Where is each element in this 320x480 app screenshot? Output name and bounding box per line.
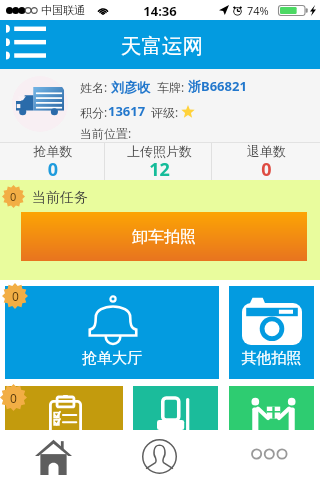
staticText: 当前位置: [80,125,132,141]
staticText: 姓名: [80,79,108,95]
button[interactable]: 任务单 [5,386,123,430]
staticText: 积分: [80,104,108,120]
staticText: 车牌: [157,79,185,95]
button[interactable]: 装车 [133,386,218,430]
button[interactable]: More [213,434,320,480]
staticText: 当前任务 [32,189,88,207]
button[interactable]: 退单数 [213,142,320,180]
staticText: 0 [213,157,320,182]
staticText: 刘彦收 [111,79,150,95]
staticText: 抢单大厅 [5,349,219,368]
button[interactable]: 抢单大厅 [5,286,219,379]
button[interactable]: 其他拍照 [229,286,314,379]
button[interactable]: Home [0,434,106,480]
staticText: 浙B66821 [188,77,247,95]
staticText: 天富运网 [121,33,203,59]
staticText: 上传照片数 [106,143,213,159]
staticText: 抢单数 [0,143,106,159]
button[interactable]: 卸车拍照 [21,212,307,261]
button[interactable]: 抢单数 [0,142,106,180]
staticText: 0 [10,189,17,204]
staticText: 评级: [151,104,179,120]
button[interactable]: Profile [106,434,213,480]
staticText: 退单数 [213,143,320,159]
staticText: 12 [106,157,213,182]
staticText: 0 [0,157,106,182]
staticText: 卸车拍照 [132,227,196,247]
staticText: 13617 [108,102,146,120]
staticText: 中国联通 [41,3,85,17]
button[interactable]: 交接 [229,386,314,430]
button[interactable]: Menu [0,20,52,69]
staticText: 14:36 [0,2,320,20]
staticText: 其他拍照 [229,349,314,368]
staticText: 0 [12,288,19,304]
staticText: 0 [10,390,17,406]
staticText: 74% [247,3,269,18]
button[interactable]: 上传照片数 [106,142,213,180]
